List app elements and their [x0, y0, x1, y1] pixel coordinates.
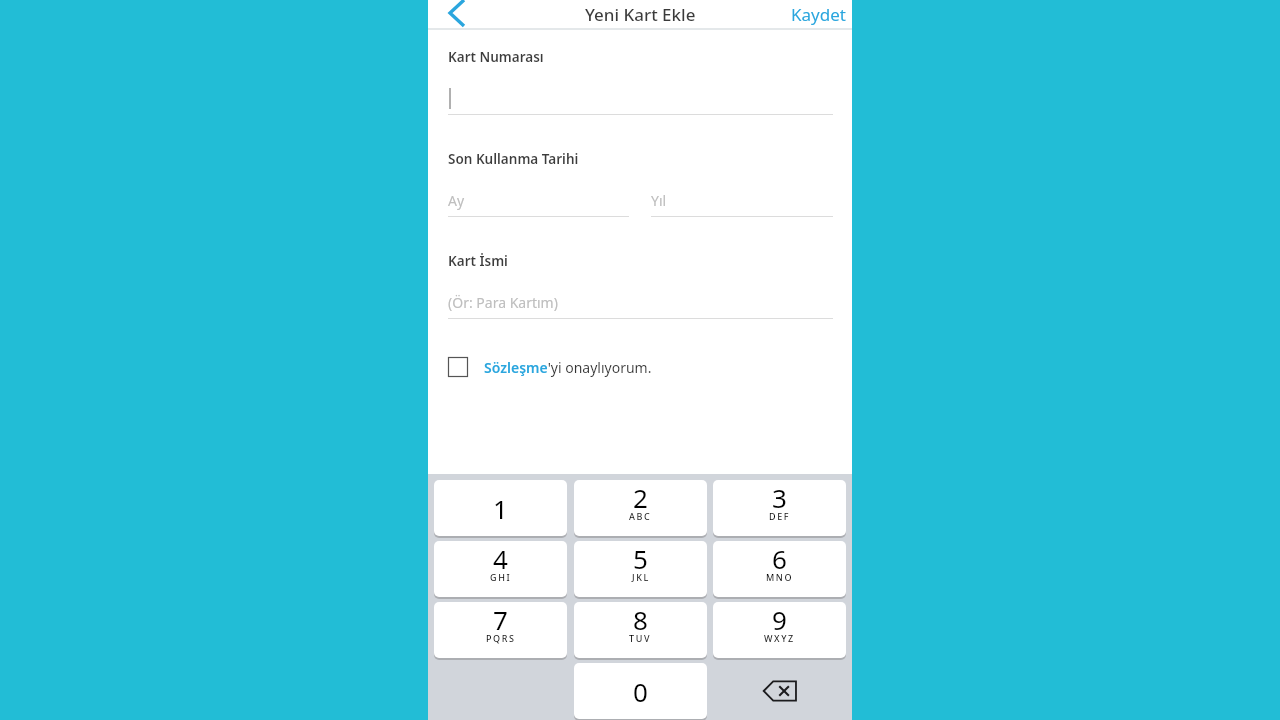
staticText: 1 — [493, 491, 508, 526]
staticText: Kart Numarası — [448, 48, 544, 66]
staticText: PQRS — [486, 632, 516, 644]
staticText: 9 — [772, 602, 787, 632]
staticText: Yeni Kart Ekle — [585, 3, 696, 26]
staticText: ABC — [629, 510, 652, 522]
staticText: WXYZ — [764, 632, 795, 644]
button[interactable]: Kaydet — [770, 0, 846, 28]
staticText: DEF — [769, 510, 791, 522]
staticText: Son Kullanma Tarihi — [448, 150, 579, 168]
staticText: JKL — [632, 571, 650, 583]
button[interactable]: 9 — [713, 602, 846, 658]
button[interactable]: Sözleşme'yi onaylıyorum. — [448, 352, 728, 382]
staticText: TUV — [629, 632, 652, 644]
staticText: Kart İsmi — [448, 252, 508, 270]
button[interactable]: 3 — [713, 480, 846, 536]
button[interactable] — [448, 78, 833, 114]
button[interactable]: Backspace — [713, 663, 846, 719]
button[interactable]: 6 — [713, 541, 846, 597]
staticText: 2 — [633, 480, 648, 510]
button[interactable]: 7 — [434, 602, 567, 658]
staticText: Ay — [448, 191, 465, 210]
button[interactable] — [448, 284, 833, 318]
staticText: 4 — [493, 541, 508, 571]
button[interactable]: 8 — [574, 602, 707, 658]
button[interactable]: 0 — [574, 663, 707, 719]
button[interactable]: 4 — [434, 541, 567, 597]
staticText: 8 — [633, 602, 648, 632]
staticText: 3 — [772, 480, 787, 510]
button[interactable] — [651, 182, 833, 216]
staticText: 5 — [633, 541, 648, 571]
staticText: Kaydet — [791, 3, 846, 26]
button[interactable]: Back — [440, 0, 480, 28]
button[interactable]: 2 — [574, 480, 707, 536]
button[interactable] — [448, 182, 629, 216]
staticText: GHI — [490, 571, 512, 583]
staticText: MNO — [766, 571, 794, 583]
staticText: (Ör: Para Kartım) — [448, 293, 558, 312]
staticText: Sözleşme'yi onaylıyorum. — [484, 358, 652, 377]
staticText: 7 — [493, 602, 508, 632]
button[interactable]: 1 — [434, 480, 567, 536]
staticText: Yıl — [651, 191, 667, 210]
staticText: 6 — [772, 541, 787, 571]
button[interactable]: 5 — [574, 541, 707, 597]
staticText: 0 — [633, 674, 648, 709]
